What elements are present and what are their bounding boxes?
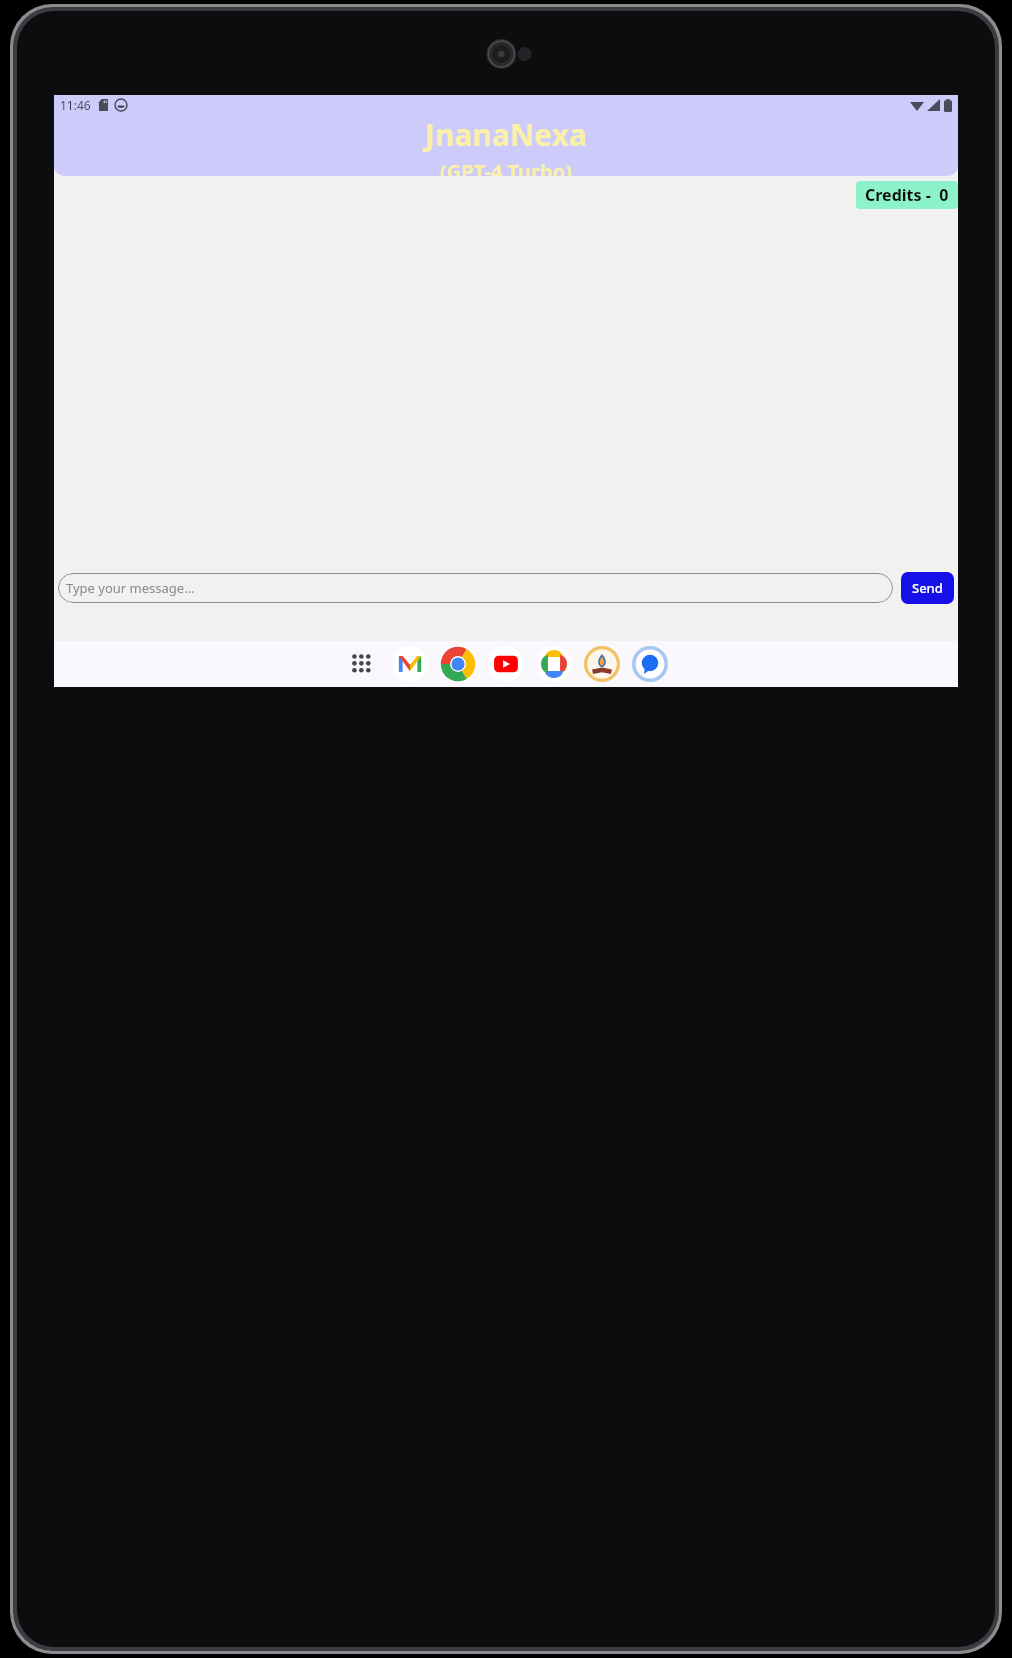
staticText: JnanaNexa	[425, 114, 587, 155]
button[interactable]: Google Photos	[535, 645, 573, 683]
button[interactable]: Chrome	[439, 645, 477, 683]
button[interactable]: Type your message...	[58, 573, 893, 603]
button[interactable]: YouTube	[487, 645, 525, 683]
staticText: (GPT-4 Turbo)	[440, 158, 572, 176]
button[interactable]: Credits - 0	[856, 181, 958, 209]
button[interactable]: Gmail	[391, 645, 429, 683]
staticText: Type your message...	[66, 579, 195, 597]
button[interactable]: All apps	[343, 645, 381, 683]
button[interactable]: JnanaNexa	[583, 645, 621, 683]
button[interactable]: Messages	[631, 645, 669, 683]
staticText: Credits - 0	[865, 184, 949, 206]
staticText: 11:46	[60, 97, 91, 113]
button[interactable]: Send	[901, 572, 954, 604]
staticText: Send	[912, 579, 943, 597]
